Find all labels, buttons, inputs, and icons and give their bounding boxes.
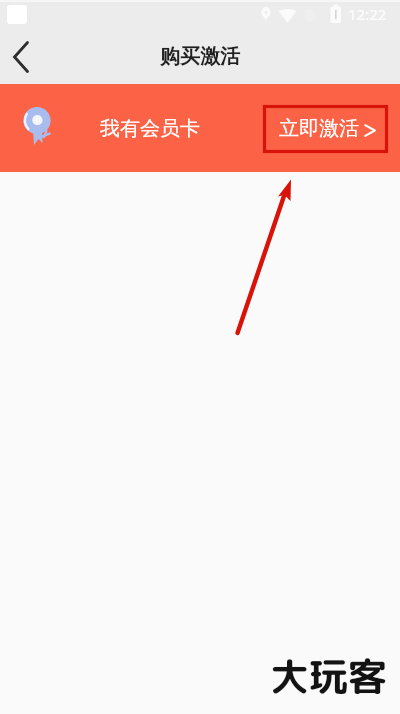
staticText: 我有会员卡: [100, 116, 200, 141]
staticText: 12:22: [348, 4, 387, 24]
button[interactable]: 我有会员卡: [0, 84, 400, 172]
button[interactable]: 立即激活: [263, 105, 387, 152]
staticText: 立即激活: [279, 116, 359, 141]
staticText: 购买激活: [160, 44, 240, 69]
staticText: 大玩客: [270, 649, 388, 703]
button[interactable]: Back: [0, 35, 44, 79]
